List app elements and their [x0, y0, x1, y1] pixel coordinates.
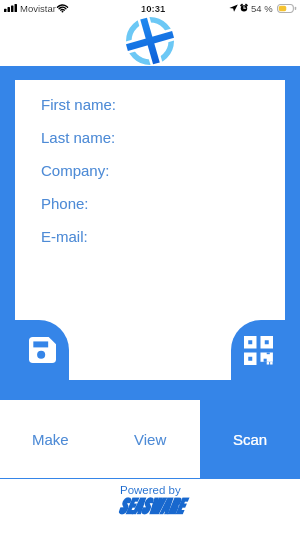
button[interactable]: Scan: [200, 400, 300, 479]
staticText: Movistar: [20, 3, 56, 14]
staticText: SEASWARE: [118, 493, 183, 520]
staticText: Phone:: [41, 195, 89, 212]
staticText: 10:31: [141, 3, 166, 14]
staticText: First name:: [41, 96, 117, 113]
button[interactable]: Show QR code: [231, 320, 285, 380]
staticText: 54 %: [251, 3, 273, 14]
staticText: Company:: [41, 162, 110, 179]
button[interactable]: View: [100, 400, 200, 478]
staticText: View: [134, 431, 167, 448]
button[interactable]: Save contact: [15, 320, 69, 380]
staticText: Scan: [233, 431, 268, 448]
staticText: Make: [32, 431, 69, 448]
staticText: Powered by: [120, 484, 181, 497]
staticText: Last name:: [41, 129, 116, 146]
staticText: E-mail:: [41, 228, 88, 245]
button[interactable]: Make: [0, 400, 100, 478]
